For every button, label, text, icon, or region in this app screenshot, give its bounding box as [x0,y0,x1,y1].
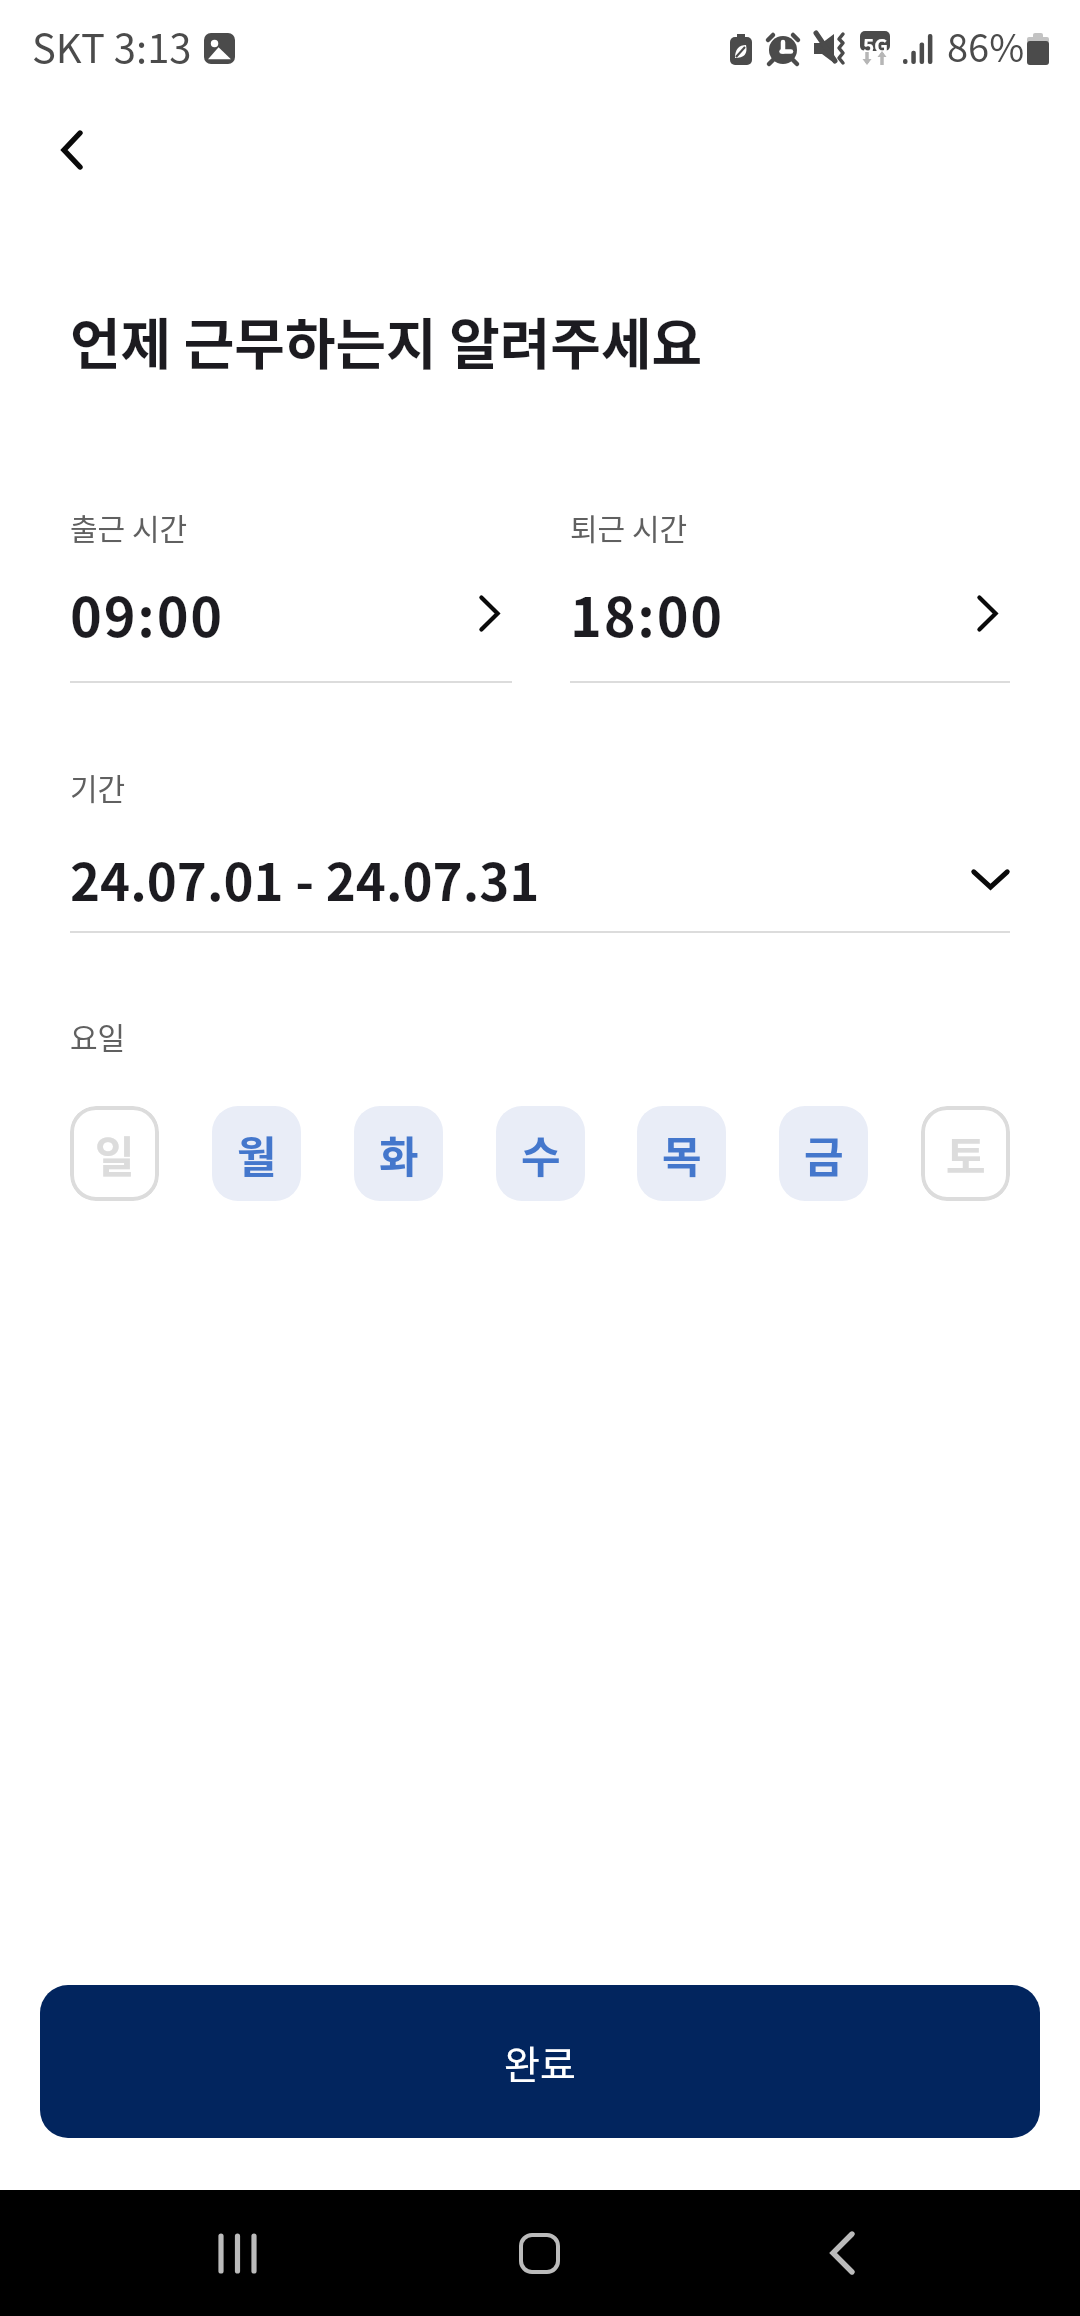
staticText: 기간 [70,765,126,808]
staticText: 화 [379,1123,419,1185]
staticText: 5G [863,31,888,51]
button[interactable]: 퇴근 시간 18:00, 선택 [570,505,1010,683]
button[interactable]: Recent apps [157,2194,317,2312]
staticText: 18:00 [570,574,724,652]
staticText: 목 [662,1123,702,1185]
staticText: 언제 근무하는지 알려주세요 [70,300,703,380]
button[interactable]: 토 [921,1106,1010,1201]
staticText: 09:00 [70,574,224,652]
staticText: 토 [946,1123,986,1185]
button[interactable]: 목 [637,1106,726,1201]
button[interactable]: Home [459,2194,619,2312]
button[interactable]: 완료 [40,1985,1040,2138]
staticText: 일 [95,1123,135,1185]
button[interactable]: 일 [70,1106,159,1201]
button[interactable]: 기간 24.07.01 - 24.07.31, 선택 [70,842,1010,916]
button[interactable]: Back [762,2194,922,2312]
staticText: 퇴근 시간 [570,505,688,548]
button[interactable]: Back [26,104,118,196]
staticText: 요일 [70,1014,126,1057]
button[interactable]: 화 [354,1106,443,1201]
button[interactable]: 금 [779,1106,868,1201]
button[interactable]: 월 [212,1106,301,1201]
staticText: 24.07.01 - 24.07.31 [70,842,540,916]
staticText: 완료 [504,2034,576,2090]
staticText: 수 [521,1123,561,1185]
staticText: 86% [947,18,1025,73]
staticText: 출근 시간 [70,505,188,548]
staticText: 월 [237,1123,277,1185]
button[interactable]: 수 [496,1106,585,1201]
staticText: 금 [804,1123,844,1185]
button[interactable]: 출근 시간 09:00, 선택 [70,505,512,683]
staticText: SKT 3:13 [32,17,192,75]
